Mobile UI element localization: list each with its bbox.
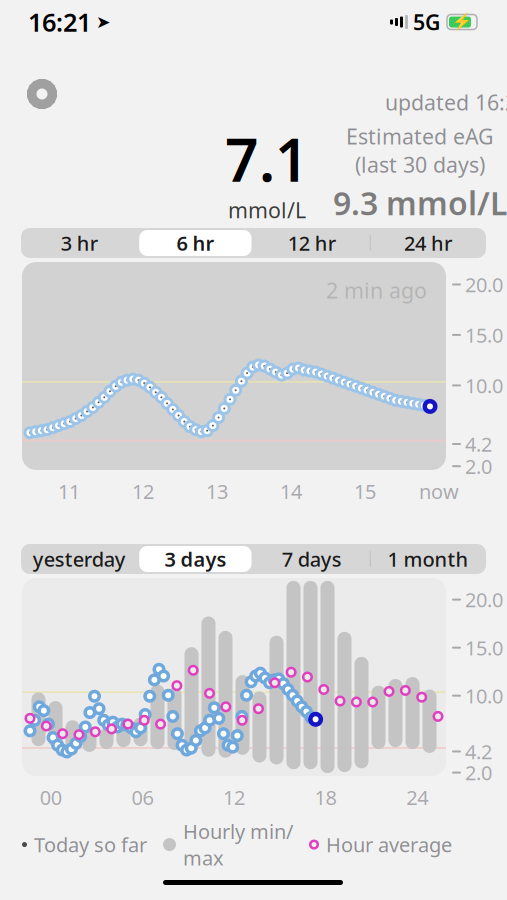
staticText: Estimated eAG <box>346 122 494 150</box>
button[interactable]: Settings <box>20 72 64 116</box>
staticText: 12 <box>132 478 154 505</box>
staticText: updated 16:21 <box>385 88 507 116</box>
staticText: 10.0 <box>465 682 503 709</box>
staticText: 15 <box>354 478 376 505</box>
staticText: 3 hr <box>61 230 98 256</box>
staticText: ➤ <box>96 12 111 32</box>
staticText: 5G <box>413 8 440 36</box>
staticText: 20.0 <box>465 586 503 613</box>
button[interactable]: yesterday <box>21 544 137 574</box>
button[interactable]: 6 hr <box>137 228 253 258</box>
staticText: 15.0 <box>465 634 503 661</box>
staticText: 2.0 <box>465 759 492 786</box>
staticText: 3 days <box>164 546 226 572</box>
staticText: 18 <box>315 784 337 811</box>
staticText: 7 days <box>282 546 342 572</box>
staticText: now <box>419 478 459 505</box>
button[interactable]: 24 hr <box>370 228 486 258</box>
staticText: 24 <box>406 784 428 811</box>
staticText: 2.0 <box>465 453 492 479</box>
staticText: Hourly min/max <box>183 818 293 871</box>
staticText: (last 30 days) <box>355 150 485 179</box>
staticText: 2 min ago <box>326 276 427 304</box>
staticText: 14 <box>280 478 302 505</box>
button[interactable]: 1 month <box>370 544 486 574</box>
staticText: 4.2 <box>465 431 492 457</box>
staticText: mmol/L <box>228 196 306 224</box>
staticText: 06 <box>131 784 153 811</box>
staticText: 11 <box>58 478 80 505</box>
staticText: 1 month <box>387 546 468 572</box>
staticText: 9.3 mmol/L <box>333 182 507 224</box>
staticText: 15.0 <box>465 322 503 348</box>
staticText: 00 <box>40 784 62 811</box>
staticText: 20.0 <box>465 271 503 298</box>
staticText: 13 <box>206 478 228 505</box>
button[interactable]: 12 hr <box>253 228 370 258</box>
staticText: ⚡ <box>452 13 472 31</box>
staticText: Today so far <box>34 831 147 858</box>
staticText: 6 hr <box>176 230 214 256</box>
button[interactable]: 7 days <box>253 544 370 574</box>
button[interactable]: 3 hr <box>21 228 137 258</box>
staticText: Hour average <box>326 831 452 858</box>
button[interactable]: 3 days <box>137 544 253 574</box>
staticText: 12 <box>223 784 245 811</box>
staticText: 12 hr <box>288 230 336 256</box>
staticText: 10.0 <box>465 372 503 399</box>
staticText: 16:21 <box>28 5 91 39</box>
staticText: 24 hr <box>404 230 452 256</box>
staticText: 7.1 <box>225 120 309 198</box>
staticText: yesterday <box>33 546 126 572</box>
staticText: 4.2 <box>465 738 492 765</box>
